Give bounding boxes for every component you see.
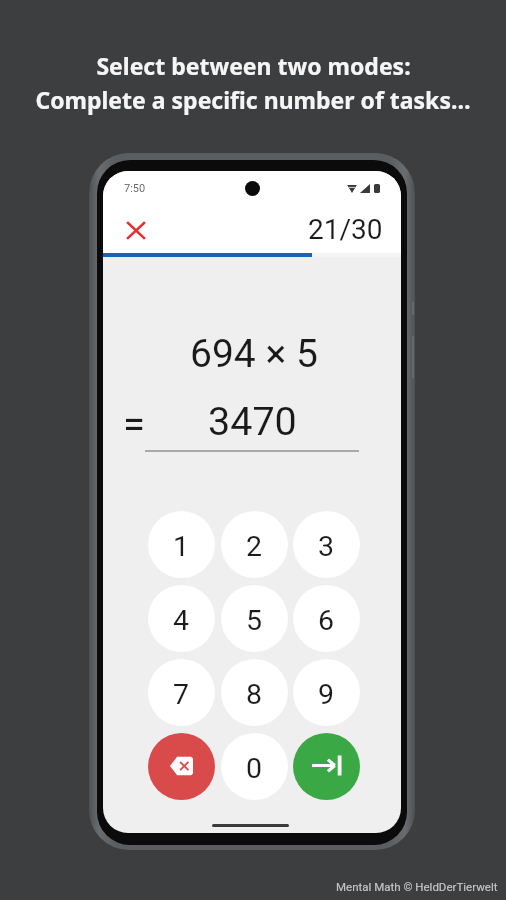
button[interactable]: 0 xyxy=(221,733,288,800)
staticText: Select between two modes: xyxy=(96,50,411,81)
staticText: 8 xyxy=(246,678,263,711)
button[interactable]: 8 xyxy=(221,659,288,726)
staticText: 3 xyxy=(318,530,335,563)
button[interactable]: Close xyxy=(119,213,153,247)
button[interactable]: 9 xyxy=(293,659,360,726)
staticText: 4 xyxy=(173,604,190,637)
button[interactable]: Backspace xyxy=(148,733,215,800)
staticText: Mental Math © HeldDerTierwelt xyxy=(336,880,498,893)
button[interactable]: 6 xyxy=(293,585,360,652)
staticText: 7:50 xyxy=(124,182,146,195)
staticText: 6 xyxy=(318,604,335,637)
staticText: 2 xyxy=(246,530,263,563)
staticText: 3470 xyxy=(208,398,297,444)
staticText: 0 xyxy=(246,752,263,785)
button[interactable]: 21/30 xyxy=(291,205,383,245)
button[interactable]: 2 xyxy=(221,511,288,578)
button[interactable]: 5 xyxy=(221,585,288,652)
staticText: 694 × 5 xyxy=(190,331,318,377)
staticText: 5 xyxy=(246,604,263,637)
staticText: 9 xyxy=(318,678,335,711)
staticText: 21/30 xyxy=(308,213,383,246)
staticText: Complete a specific number of tasks… xyxy=(35,84,471,115)
button[interactable]: Submit answer xyxy=(293,733,360,800)
staticText: 1 xyxy=(173,530,190,563)
button[interactable]: 3 xyxy=(293,511,360,578)
staticText: 7 xyxy=(173,678,190,711)
button[interactable]: 4 xyxy=(148,585,215,652)
button[interactable]: 1 xyxy=(148,511,215,578)
button[interactable]: 7 xyxy=(148,659,215,726)
staticText: = xyxy=(123,401,145,448)
